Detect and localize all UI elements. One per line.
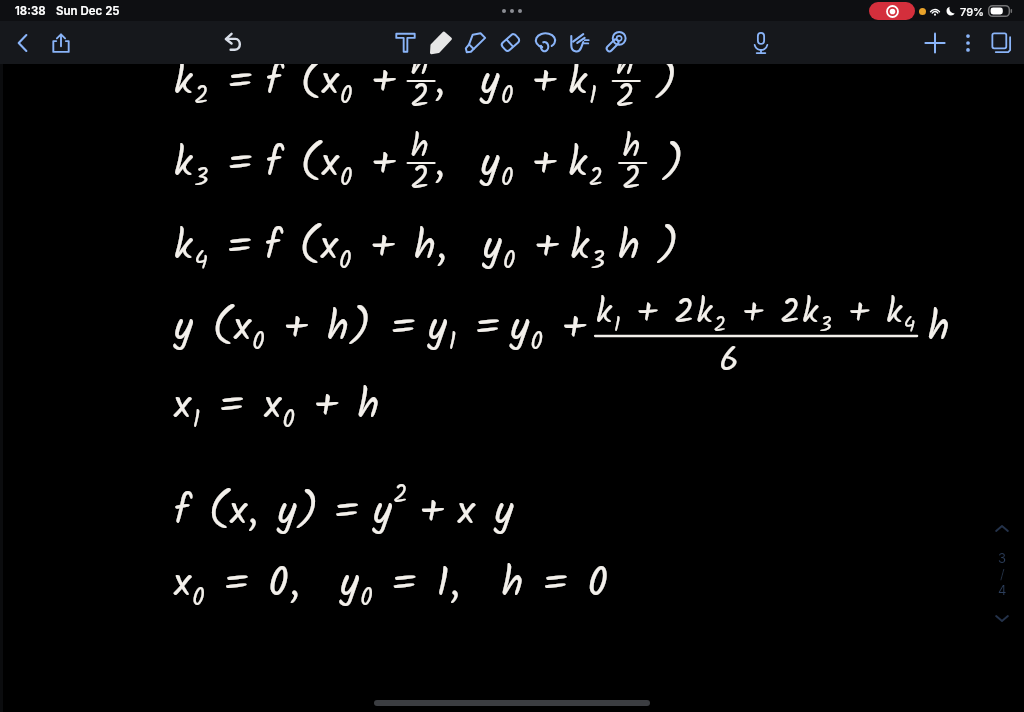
staticText: 4 — [998, 582, 1007, 598]
button[interactable]: More options — [951, 26, 984, 59]
button[interactable]: Lasso select — [528, 25, 563, 60]
staticText: 3 — [998, 550, 1007, 566]
button[interactable]: Pointer — [563, 25, 598, 60]
button[interactable]: Screen recording — [869, 2, 915, 20]
button[interactable]: Add page — [918, 26, 951, 59]
button[interactable]: Back — [3, 23, 43, 63]
button[interactable]: Undo — [213, 23, 253, 63]
staticText: 79% — [960, 5, 985, 18]
staticText: / — [1000, 566, 1005, 582]
button[interactable]: Share — [41, 23, 81, 63]
button[interactable]: Text tool — [388, 25, 423, 60]
button[interactable]: Highlighter — [458, 25, 493, 60]
button[interactable]: Record audio — [741, 23, 781, 63]
button[interactable]: Page thumbnails — [984, 26, 1017, 59]
staticText: Sun Dec 25 — [56, 4, 120, 18]
button[interactable]: Shape tool — [598, 25, 633, 60]
button[interactable]: Eraser — [493, 25, 528, 60]
button[interactable]: Next page — [989, 605, 1015, 631]
staticText: 18:38 — [15, 4, 46, 18]
button[interactable]: Previous page — [989, 516, 1015, 542]
button[interactable]: Pen tool — [423, 25, 458, 60]
